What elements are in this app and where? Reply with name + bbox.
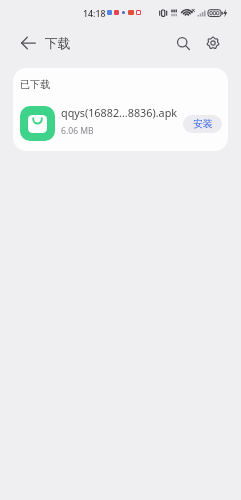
button[interactable]: 安装 <box>183 115 222 133</box>
staticText: 已下载 <box>20 78 50 91</box>
button[interactable]: Settings <box>194 24 232 62</box>
staticText: 6.06 MB <box>61 125 94 137</box>
button[interactable]: Search <box>164 24 202 62</box>
staticText: 安装 <box>193 118 213 130</box>
staticText: 下载 <box>45 36 71 52</box>
button[interactable]: qqys(16882...8836).apk <box>13 106 228 141</box>
staticText: 14:18 <box>83 8 106 20</box>
staticText: qqys(16882...8836).apk <box>61 105 178 120</box>
button[interactable]: Back <box>9 24 47 62</box>
